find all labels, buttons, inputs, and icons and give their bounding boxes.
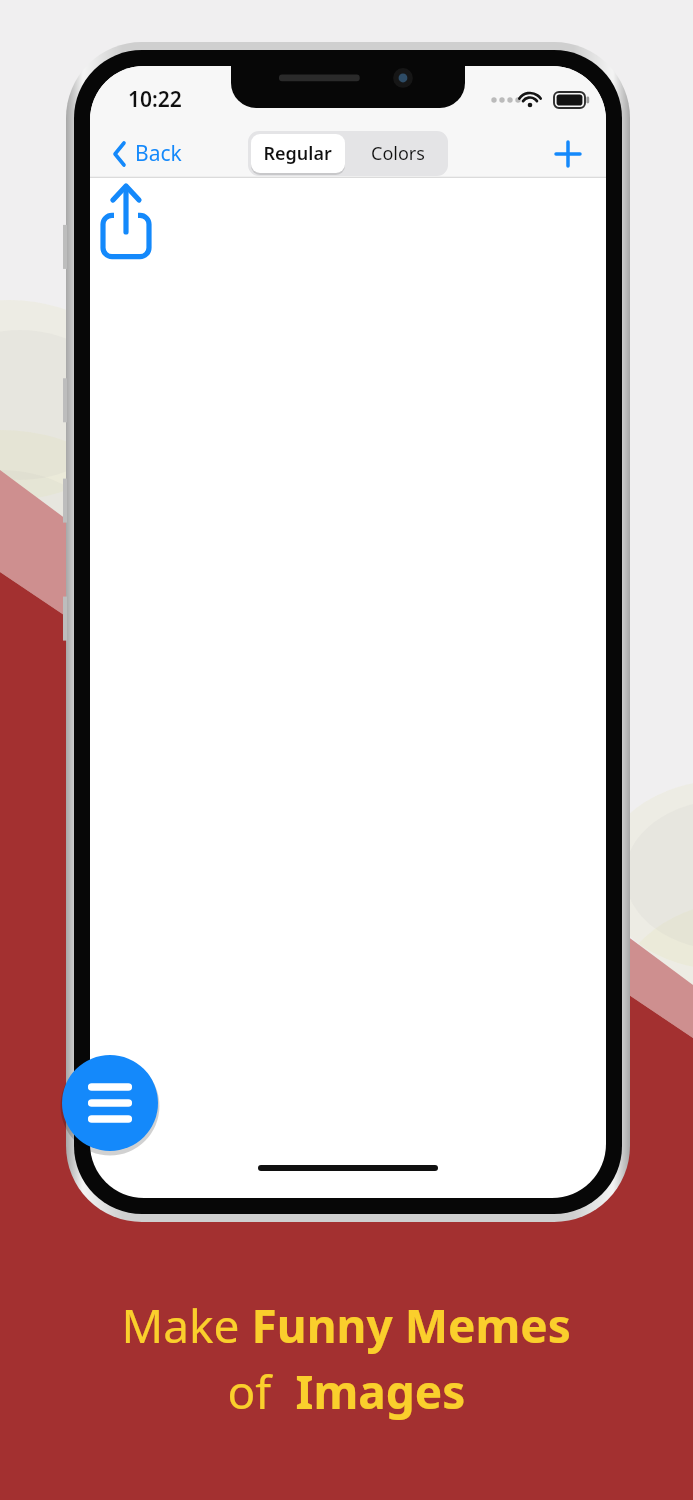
button[interactable] [96,132,200,178]
button[interactable] [252,132,348,176]
button[interactable]: Share [98,188,156,252]
button[interactable]: Add [542,132,598,178]
button[interactable] [350,132,450,176]
button[interactable]: Menu [62,1055,158,1151]
